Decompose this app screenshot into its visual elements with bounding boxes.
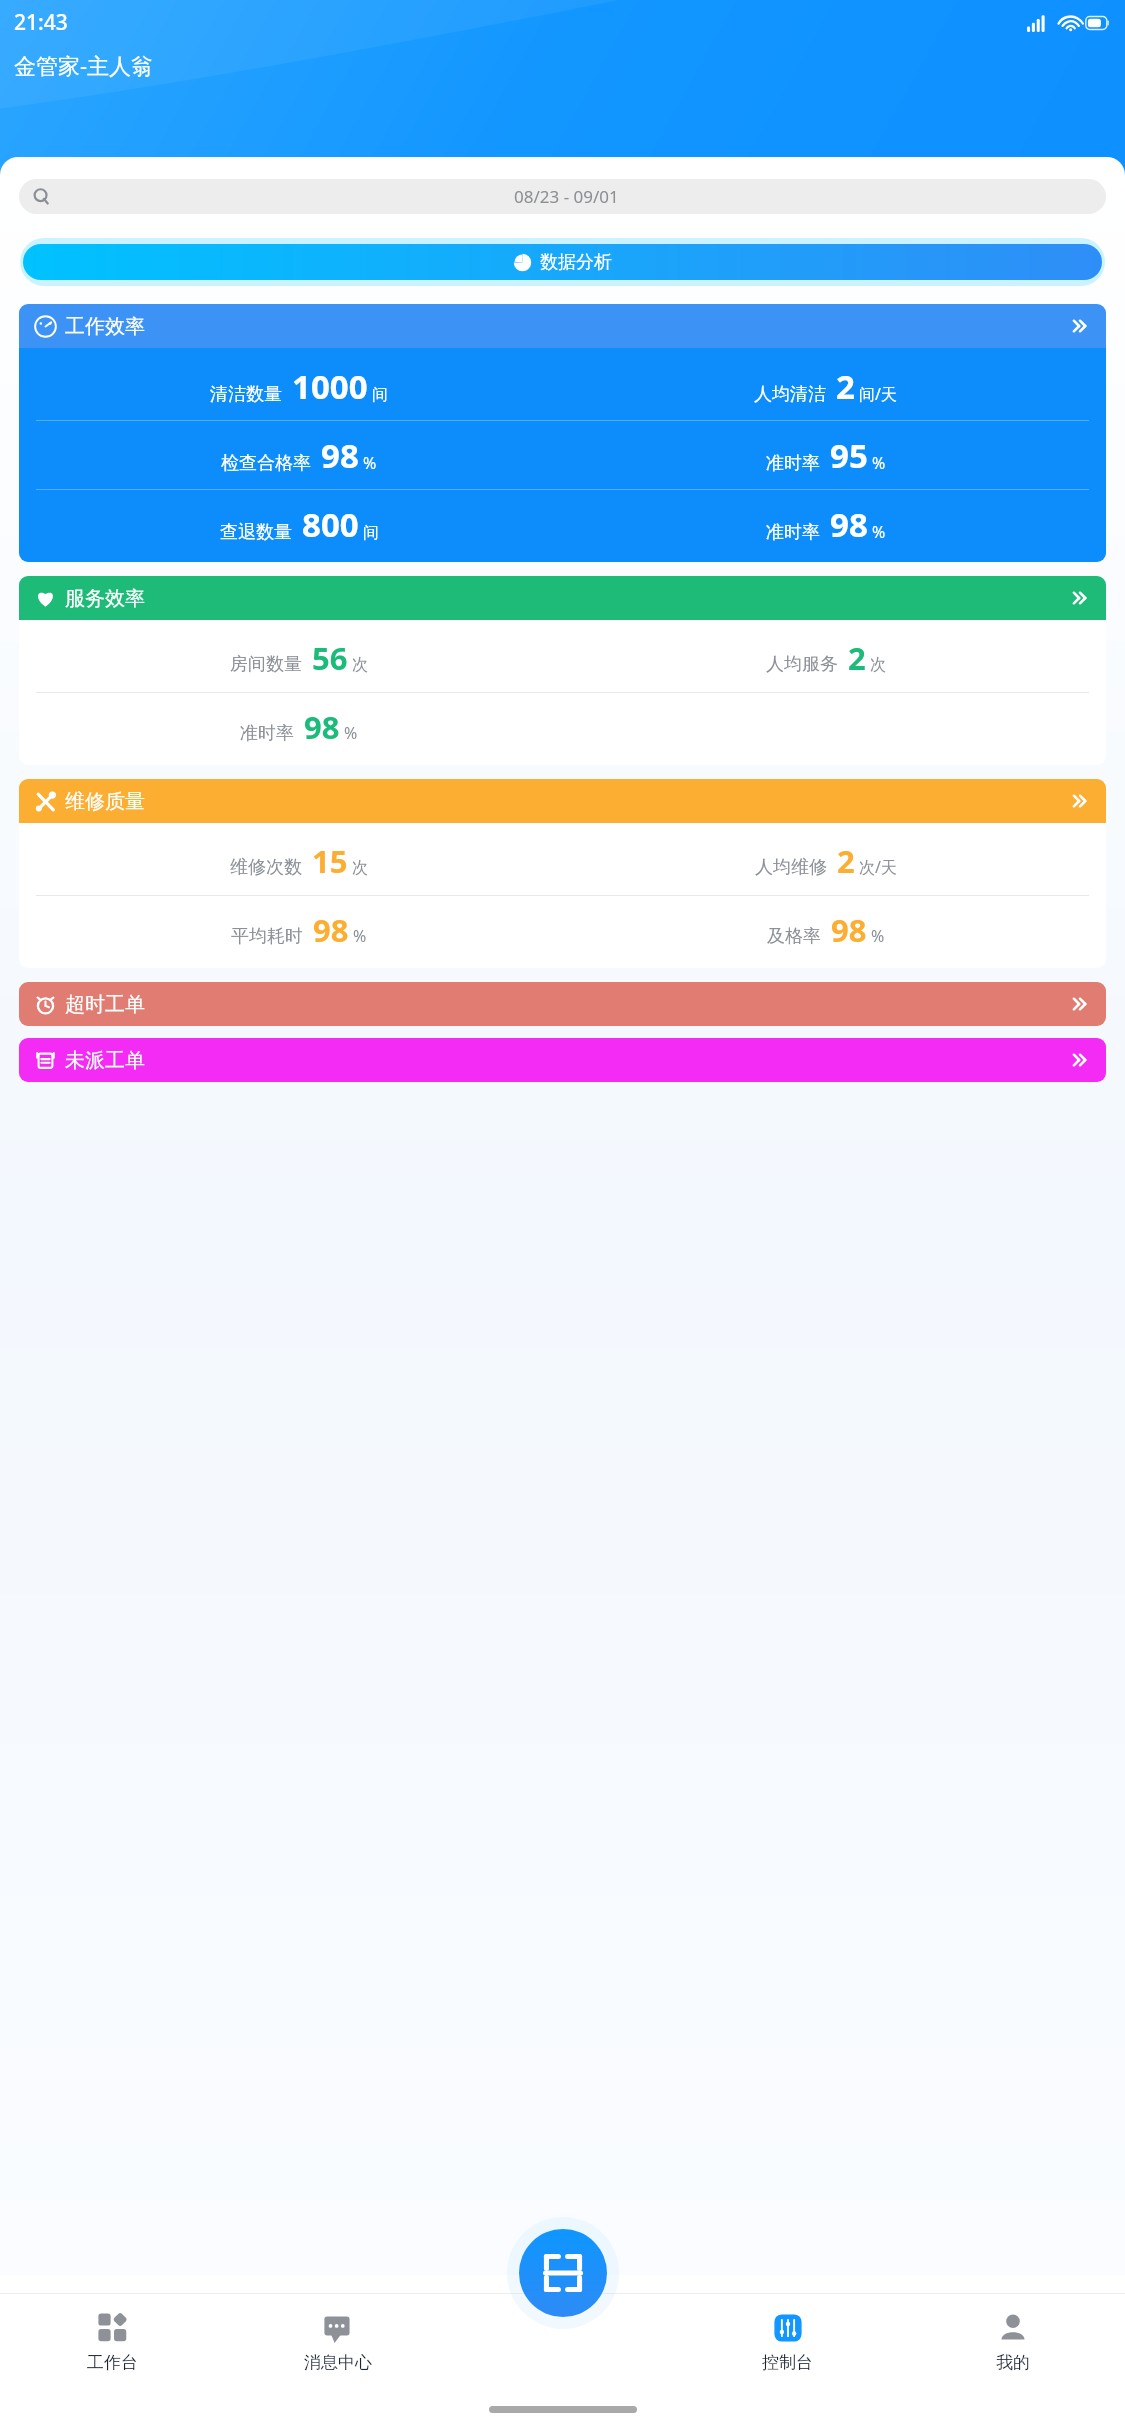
button[interactable]: 工作台 xyxy=(0,2294,225,2390)
button[interactable]: 控制台 xyxy=(675,2294,900,2390)
staticText: % xyxy=(344,722,358,744)
staticText: 次 xyxy=(352,858,368,878)
staticText: 800 xyxy=(302,502,359,547)
staticText: 金管家-主人翁 xyxy=(14,50,154,80)
button[interactable]: 扫一扫 xyxy=(519,2229,607,2317)
staticText: 08/23 - 09/01 xyxy=(514,185,619,208)
staticText: 我的 xyxy=(996,2352,1030,2373)
staticText: % xyxy=(872,521,886,543)
button[interactable]: 消息中心 xyxy=(225,2294,450,2390)
staticText: 15 xyxy=(312,840,348,882)
staticText: 工作效率 xyxy=(65,314,145,339)
staticText: 服务效率 xyxy=(65,586,145,611)
staticText: 人均服务 xyxy=(766,653,838,676)
staticText: 消息中心 xyxy=(304,2352,372,2373)
staticText: 98 xyxy=(313,909,349,951)
staticText: 准时率 xyxy=(766,452,820,475)
staticText: 准时率 xyxy=(766,521,820,544)
staticText: % xyxy=(872,452,886,474)
staticText: 56 xyxy=(312,637,348,679)
staticText: 2 xyxy=(837,840,855,882)
staticText: 98 xyxy=(321,433,359,478)
staticText: 间 xyxy=(363,523,379,543)
staticText: 次/天 xyxy=(859,856,897,878)
staticText: 95 xyxy=(830,433,868,478)
staticText: 人均清洁 xyxy=(754,383,826,406)
button[interactable]: 维修质量 xyxy=(19,779,1106,823)
staticText: 2 xyxy=(848,637,866,679)
staticText: 控制台 xyxy=(762,2352,813,2373)
staticText: 间 xyxy=(372,385,388,405)
staticText: 超时工单 xyxy=(65,992,145,1017)
staticText: 2 xyxy=(836,364,855,409)
button[interactable]: 数据分析 xyxy=(23,244,1102,280)
staticText: % xyxy=(871,925,885,947)
staticText: 清洁数量 xyxy=(210,383,282,406)
staticText: 房间数量 xyxy=(230,653,302,676)
staticText: 98 xyxy=(304,706,340,748)
staticText: 间/天 xyxy=(859,383,897,405)
button[interactable]: 超时工单 xyxy=(19,982,1106,1026)
button[interactable]: 我的 xyxy=(900,2294,1125,2390)
button[interactable]: 未派工单 xyxy=(19,1038,1106,1082)
staticText: % xyxy=(353,925,367,947)
staticText: 1000 xyxy=(292,364,368,409)
staticText: 维修质量 xyxy=(65,789,145,814)
button[interactable]: 工作效率 xyxy=(19,304,1106,348)
staticText: 查退数量 xyxy=(220,521,292,544)
staticText: 98 xyxy=(830,502,868,547)
staticText: 准时率 xyxy=(240,722,294,745)
staticText: 维修次数 xyxy=(230,856,302,879)
staticText: 98 xyxy=(831,909,867,951)
staticText: 未派工单 xyxy=(65,1048,145,1073)
staticText: 人均维修 xyxy=(755,856,827,879)
staticText: 工作台 xyxy=(87,2352,138,2373)
staticText: 21:43 xyxy=(14,8,68,37)
staticText: 次 xyxy=(870,655,886,675)
button[interactable]: 服务效率 xyxy=(19,576,1106,620)
button[interactable]: 08/23 - 09/01 xyxy=(19,179,1106,214)
staticText: 及格率 xyxy=(767,925,821,948)
staticText: 检查合格率 xyxy=(221,452,311,475)
staticText: 次 xyxy=(352,655,368,675)
staticText: 平均耗时 xyxy=(231,925,303,948)
staticText: % xyxy=(363,452,377,474)
staticText: 数据分析 xyxy=(540,251,612,274)
